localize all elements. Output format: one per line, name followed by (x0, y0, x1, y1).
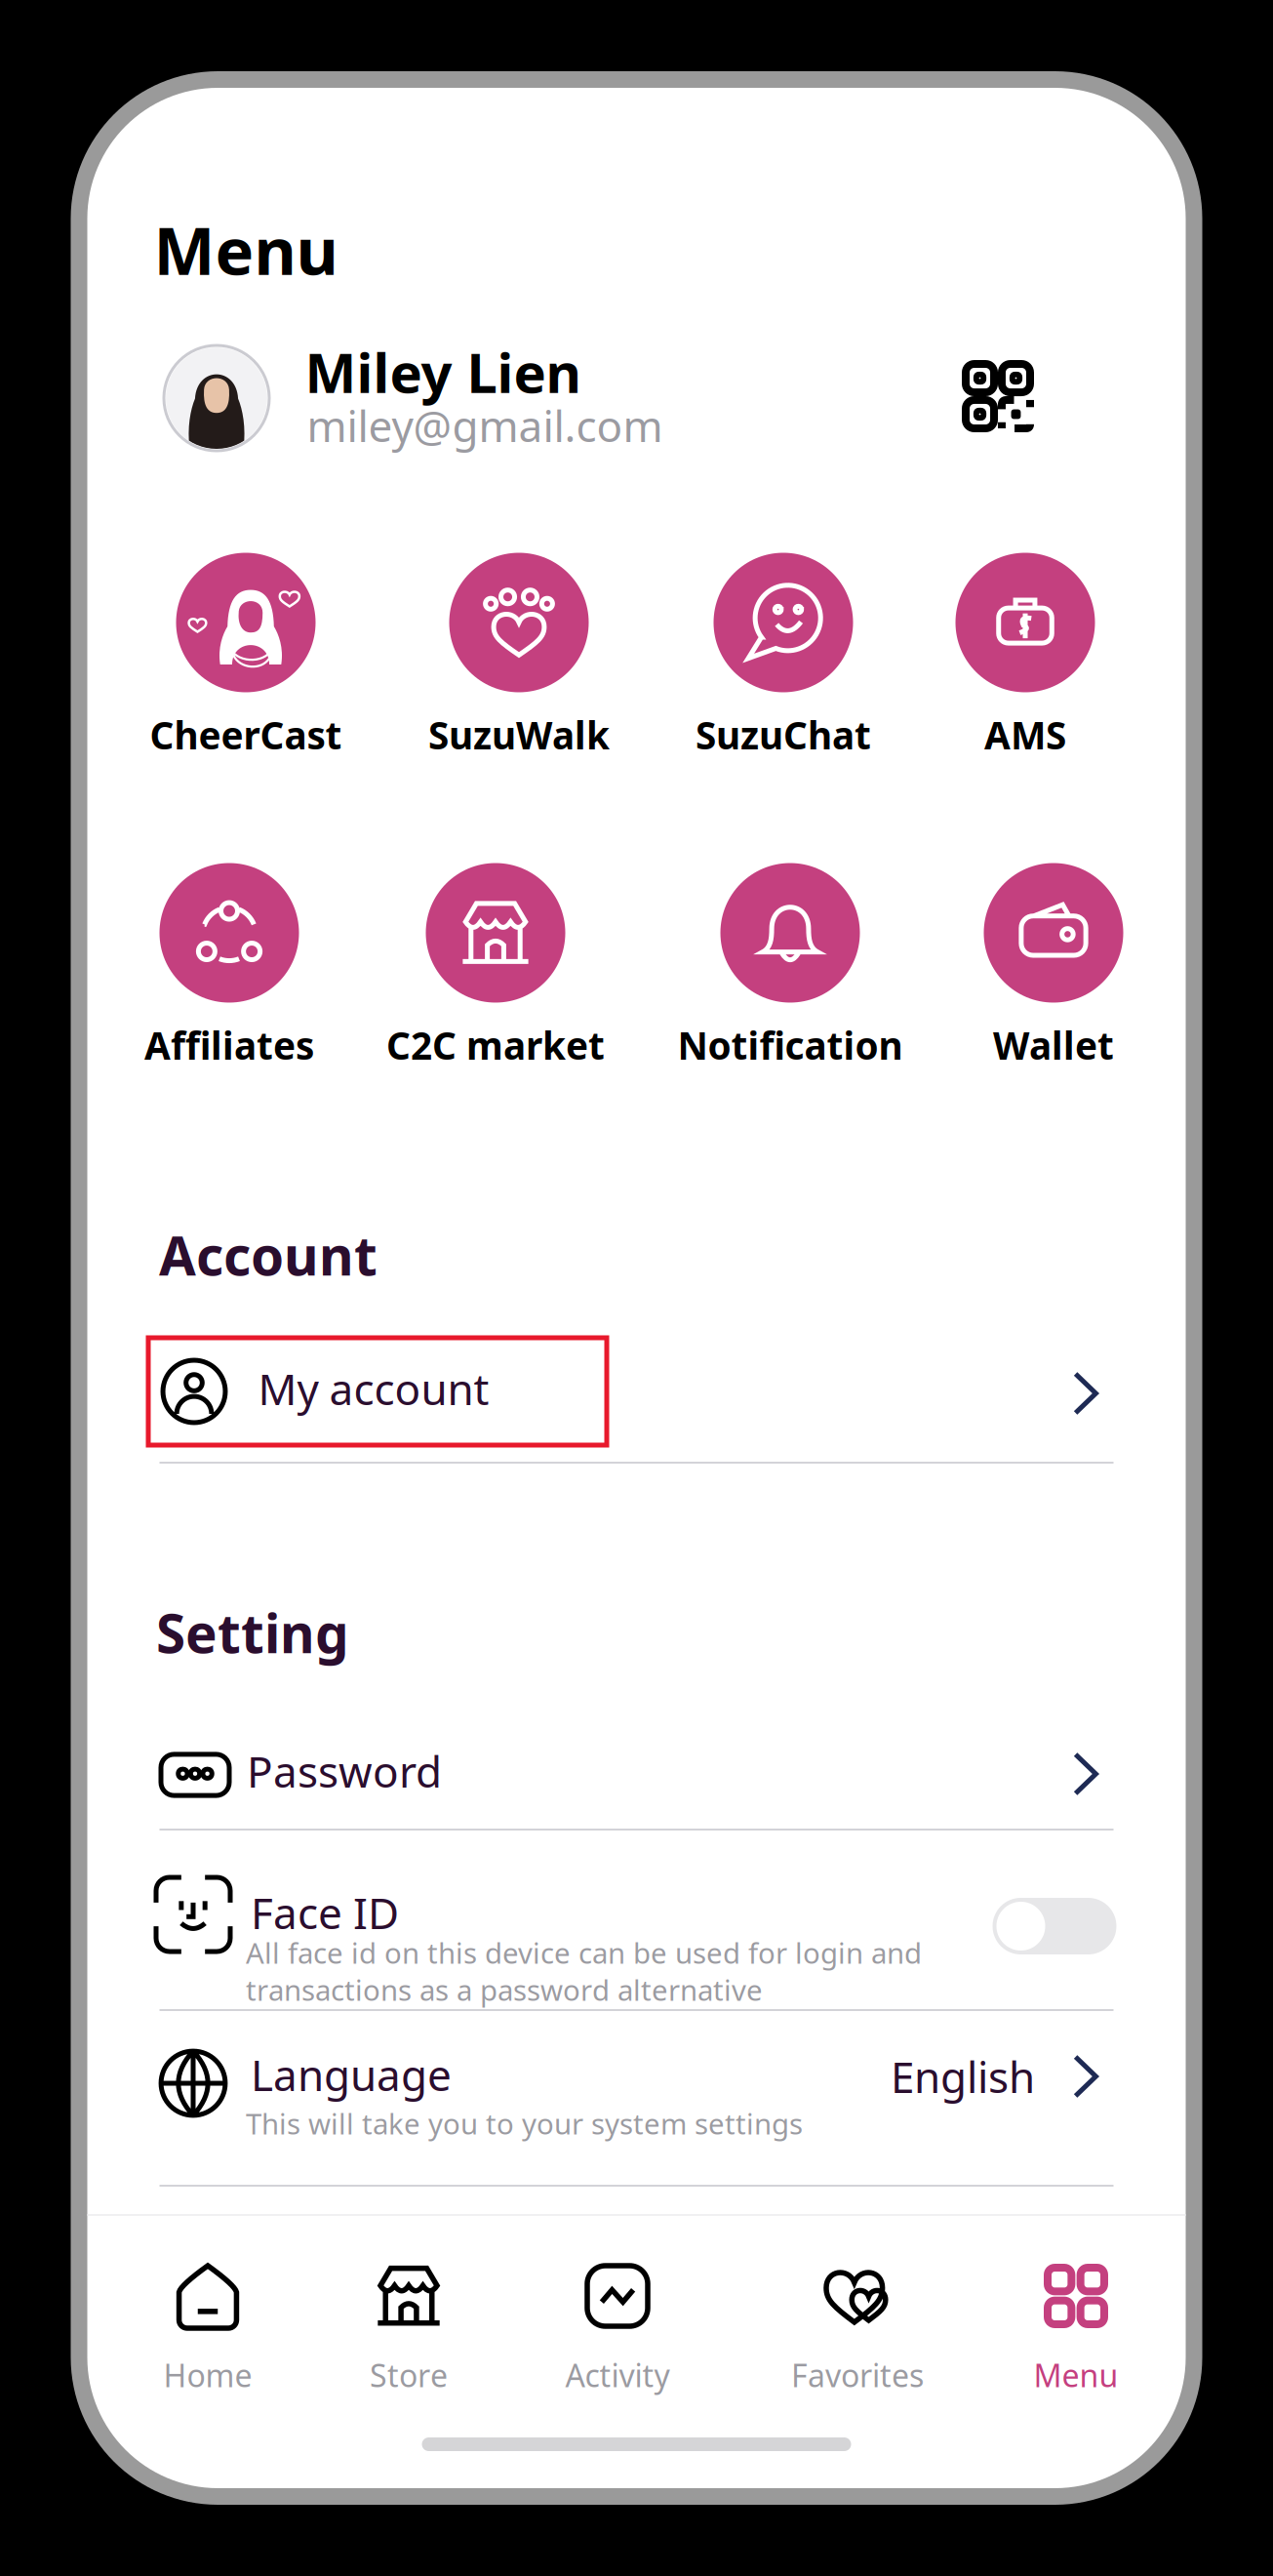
staticText: CheerCast (150, 710, 342, 760)
staticText: miley@gmail.com (307, 397, 663, 454)
staticText: English (891, 2048, 1035, 2105)
button[interactable]: Face ID (979, 1884, 1130, 1968)
button[interactable]: CheerCast (119, 552, 373, 767)
button[interactable]: Wallet (927, 863, 1180, 1077)
staticText: Language (251, 2046, 452, 2103)
staticText: Affiliates (144, 1020, 314, 1070)
staticText: Password (247, 1743, 442, 1799)
button[interactable]: C2C market (369, 863, 622, 1077)
staticText: Store (370, 2354, 448, 2396)
staticText: Activity (565, 2354, 670, 2396)
staticText: Setting (156, 1597, 349, 1668)
button[interactable]: SuzuChat (656, 552, 910, 767)
button[interactable]: Change password (1052, 1731, 1120, 1817)
staticText: Notification (677, 1020, 903, 1070)
staticText: Account (159, 1219, 378, 1290)
staticText: Favorites (791, 2354, 924, 2396)
staticText: Menu (154, 207, 338, 293)
button[interactable]: Affiliates (102, 863, 356, 1077)
staticText: Miley Lien (305, 335, 581, 408)
button[interactable]: Menu (978, 2247, 1174, 2403)
staticText: SuzuChat (696, 710, 871, 760)
button[interactable]: Scan QR code (944, 342, 1052, 450)
button[interactable]: Activity (520, 2247, 715, 2403)
staticText: My account (258, 1360, 489, 1417)
staticText: C2C market (386, 1020, 605, 1070)
staticText: All face id on this device can be used f… (246, 1933, 922, 1972)
staticText: This will take you to your system settin… (246, 2104, 803, 2142)
button[interactable]: Favorites (760, 2247, 955, 2403)
button[interactable]: Notification (663, 863, 917, 1077)
button[interactable]: Open My account (1052, 1350, 1120, 1436)
staticText: Face ID (251, 1884, 399, 1941)
button[interactable]: Change language (1052, 2033, 1120, 2119)
staticText: Menu (1034, 2354, 1118, 2396)
button[interactable]: Password (231, 1727, 457, 1815)
button[interactable]: AMS (898, 552, 1152, 767)
button[interactable]: Store (311, 2247, 506, 2403)
button[interactable]: SuzuWalk (392, 552, 646, 767)
staticText: SuzuWalk (428, 710, 610, 760)
staticText: Home (163, 2354, 252, 2396)
button[interactable]: My account (148, 1338, 607, 1445)
button[interactable]: Home (110, 2247, 305, 2403)
staticText: AMS (984, 710, 1066, 760)
staticText: Wallet (993, 1020, 1114, 1070)
staticText: transactions as a password alternative (246, 1971, 763, 2009)
